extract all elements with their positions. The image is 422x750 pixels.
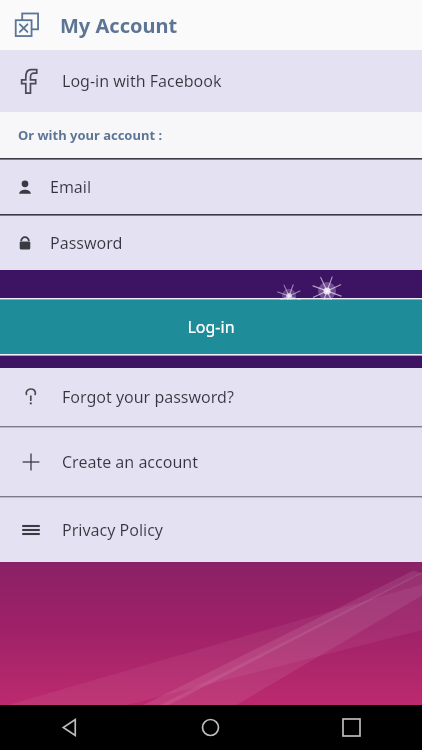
staticText: Create an account [62, 451, 198, 473]
button[interactable]: Close [8, 6, 46, 44]
button[interactable]: Password [0, 216, 422, 270]
staticText: Password [50, 232, 123, 254]
staticText: Privacy Policy [62, 519, 163, 541]
button[interactable]: Back [0, 705, 140, 750]
staticText: Log-in [187, 316, 235, 338]
button[interactable]: Log-in [0, 300, 422, 354]
button[interactable]: Privacy Policy [0, 498, 422, 562]
staticText: Email [50, 176, 92, 198]
staticText: Forgot your password? [62, 386, 234, 408]
button[interactable]: Home [140, 705, 281, 750]
button[interactable]: Log-in with Facebook [0, 50, 422, 112]
button[interactable]: Forgot your password? [0, 368, 422, 426]
button[interactable]: Email [0, 160, 422, 214]
button[interactable]: Create an account [0, 428, 422, 496]
staticText: My Account [60, 12, 178, 39]
staticText: Log-in with Facebook [62, 70, 222, 92]
staticText: Or with your account : [18, 126, 163, 144]
button[interactable]: Recent apps [281, 705, 422, 750]
